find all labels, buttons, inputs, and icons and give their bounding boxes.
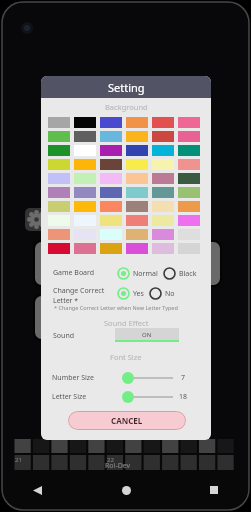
staticText: 7 [181, 373, 186, 383]
staticText: Letter Size [52, 392, 87, 402]
button[interactable]: Black [163, 267, 197, 280]
staticText: 21 [15, 456, 22, 464]
button[interactable] [121, 390, 173, 404]
staticText: * Change Correct Letter when New Letter … [54, 304, 178, 311]
staticText: CANCEL [111, 415, 143, 426]
button[interactable]: CANCEL [68, 411, 186, 430]
button[interactable]: Settings [25, 208, 48, 231]
button[interactable]: ON [115, 328, 179, 342]
staticText: Normal [133, 269, 158, 279]
staticText: 22 [107, 456, 114, 464]
staticText: Game Board [53, 268, 95, 278]
staticText: Letter * [53, 296, 79, 306]
staticText: Sound Effect [104, 318, 149, 328]
staticText: Background [105, 102, 148, 112]
button[interactable]: Back [24, 477, 50, 503]
staticText: Font Size [110, 352, 142, 362]
staticText: No [165, 289, 175, 299]
button[interactable]: Yes [117, 287, 144, 300]
staticText: ON [142, 331, 152, 339]
staticText: Rol-Dev [105, 461, 131, 471]
staticText: Number Size [52, 373, 95, 383]
button[interactable] [121, 371, 173, 385]
staticText: Change Correct [53, 286, 105, 296]
button[interactable]: Recents [201, 477, 227, 503]
staticText: Black [179, 269, 197, 279]
staticText: 18 [179, 392, 188, 402]
staticText: Sound [53, 331, 75, 341]
staticText: Setting [108, 80, 145, 95]
staticText: Yes [133, 289, 144, 299]
button[interactable]: Normal [117, 267, 158, 280]
button[interactable]: No [149, 287, 175, 300]
button[interactable]: Home [113, 477, 139, 503]
